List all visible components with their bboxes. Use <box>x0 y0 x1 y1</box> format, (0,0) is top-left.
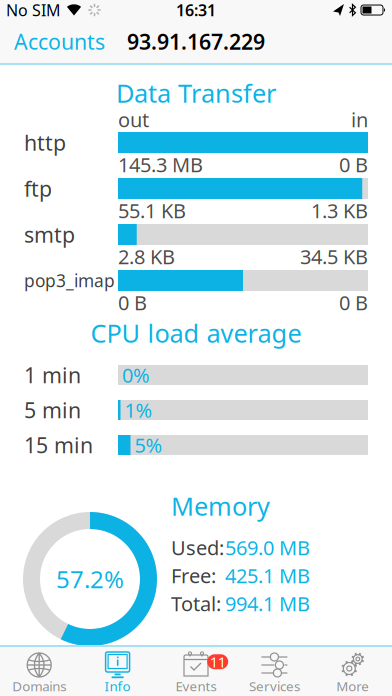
staticText: 57.2% <box>56 563 124 595</box>
staticText: CPU load average <box>90 316 301 350</box>
staticText: Total: <box>171 590 221 617</box>
staticText: More <box>336 677 369 695</box>
staticText: Info <box>105 677 131 695</box>
staticText: 15 min <box>24 431 93 459</box>
button[interactable]: Services <box>235 647 314 696</box>
staticText: 0% <box>122 362 150 388</box>
staticText: 5% <box>134 432 162 458</box>
staticText: Free: <box>171 562 216 589</box>
staticText: 145.3 MB <box>118 151 203 178</box>
staticText: 0 B <box>339 289 368 316</box>
staticText: 16:31 <box>176 0 216 21</box>
button[interactable]: Accounts <box>14 27 105 56</box>
staticText: Data Transfer <box>116 76 276 110</box>
button[interactable]: Info <box>78 647 157 696</box>
staticText: 1.3 KB <box>311 197 368 224</box>
staticText: Services <box>249 677 300 695</box>
staticText: 1 min <box>24 361 81 389</box>
staticText: 2.8 KB <box>118 243 175 270</box>
staticText: in <box>351 106 368 133</box>
staticText: Used: <box>171 534 224 561</box>
button[interactable]: Events <box>157 647 235 696</box>
staticText: 994.1 MB <box>225 590 310 617</box>
staticText: 425.1 MB <box>225 562 310 589</box>
staticText: Accounts <box>14 27 105 56</box>
staticText: Domains <box>12 677 66 695</box>
staticText: 55.1 KB <box>118 197 186 224</box>
staticText: smtp <box>24 220 75 249</box>
staticText: 5 min <box>24 396 81 424</box>
staticText: Memory <box>171 489 270 523</box>
staticText: No SIM <box>6 0 61 21</box>
staticText: Events <box>175 677 216 695</box>
staticText: pop3_imap <box>24 269 115 292</box>
staticText: 569.0 MB <box>225 534 310 561</box>
staticText: 1% <box>124 397 152 423</box>
staticText: 93.91.167.229 <box>127 27 265 56</box>
staticText: ftp <box>24 174 52 203</box>
staticText: http <box>24 128 66 157</box>
staticText: out <box>118 106 149 133</box>
staticText: 11 <box>210 652 226 671</box>
button[interactable]: Domains <box>0 647 78 696</box>
staticText: 0 B <box>118 289 147 316</box>
button[interactable]: More <box>314 647 392 696</box>
staticText: 34.5 KB <box>300 243 368 270</box>
staticText: 0 B <box>339 151 368 178</box>
